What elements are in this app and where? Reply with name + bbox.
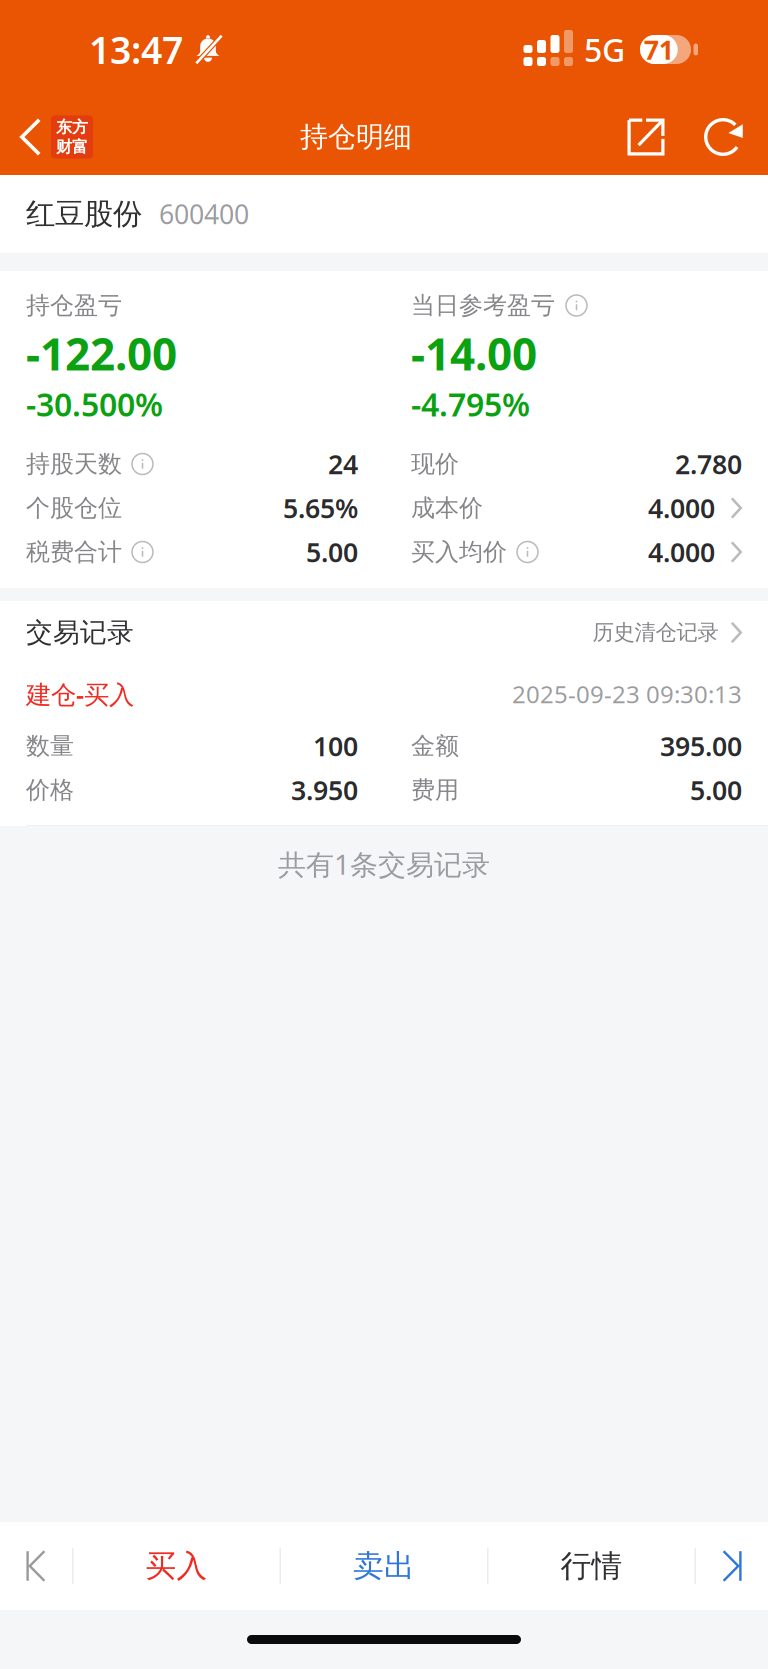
staticText: 个股仓位 [26, 493, 122, 523]
staticText: 持仓盈亏 [26, 291, 122, 320]
staticText: 价格 [26, 775, 74, 805]
staticText: 2.780 [675, 446, 742, 482]
staticText: 600400 [159, 196, 249, 232]
staticText: 卖出 [353, 1547, 415, 1585]
staticText: 100 [313, 728, 358, 764]
staticText: 财富 [56, 137, 88, 157]
button[interactable]: 返回 [0, 99, 107, 175]
staticText: -122.00 [26, 324, 177, 383]
staticText: 历史清仓记录 [593, 619, 719, 646]
staticText: 红豆股份 [26, 196, 142, 232]
staticText: 5G [584, 28, 625, 71]
staticText: 行情 [560, 1547, 622, 1585]
staticText: 买入均价 [411, 537, 507, 567]
staticText: 数量 [26, 731, 74, 761]
staticText: 税费合计 [26, 537, 122, 567]
staticText: 当日参考盈亏 [411, 291, 555, 320]
button[interactable]: 上一只股票 [0, 1522, 72, 1610]
staticText: 建仓-买入 [26, 677, 134, 711]
staticText: 5.00 [306, 534, 358, 570]
staticText: 71 [644, 32, 674, 67]
staticText: 4.000 [648, 490, 715, 526]
staticText: 3.950 [291, 772, 358, 808]
staticText: 2025-09-23 09:30:13 [512, 678, 742, 710]
staticText: 持仓明细 [300, 120, 412, 154]
button[interactable]: 买入 [73, 1522, 279, 1610]
staticText: 东方 [56, 117, 88, 137]
staticText: -30.500% [26, 383, 163, 425]
button[interactable]: 下一只股票 [696, 1522, 768, 1610]
staticText: -4.795% [411, 383, 530, 425]
button[interactable]: 分享 [605, 99, 687, 175]
staticText: 成本价 [411, 493, 483, 523]
staticText: 5.00 [690, 772, 742, 808]
staticText: 现价 [411, 449, 459, 479]
staticText: 395.00 [660, 728, 742, 764]
staticText: 持股天数 [26, 449, 122, 479]
button[interactable]: 刷新 [687, 99, 759, 175]
button[interactable]: 卖出 [281, 1522, 487, 1610]
staticText: 费用 [411, 775, 459, 805]
staticText: 金额 [411, 731, 459, 761]
staticText: 5.65% [283, 490, 358, 526]
staticText: -14.00 [411, 324, 537, 383]
staticText: 4.000 [648, 534, 715, 570]
button[interactable]: 历史清仓记录 [593, 619, 742, 646]
staticText: 24 [328, 446, 358, 482]
staticText: 共有1条交易记录 [278, 845, 490, 883]
staticText: 买入 [145, 1547, 207, 1585]
staticText: 交易记录 [26, 616, 134, 649]
staticText: 13:47 [89, 25, 183, 74]
button[interactable]: 行情 [488, 1522, 694, 1610]
